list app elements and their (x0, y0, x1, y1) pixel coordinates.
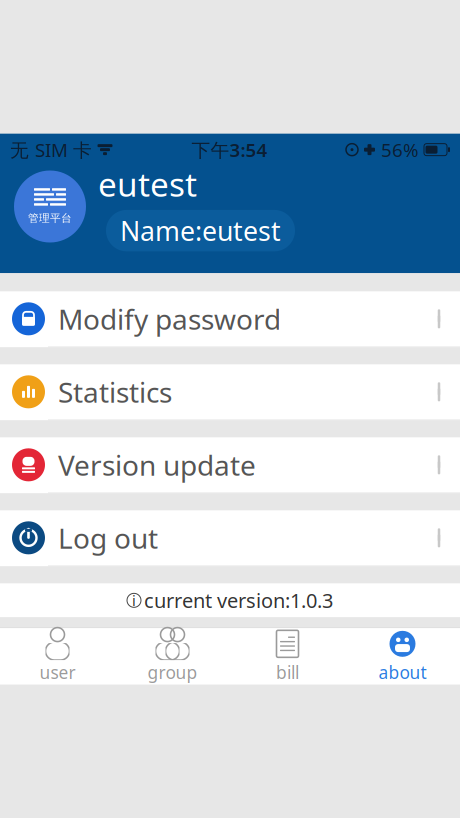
button[interactable]: user (0, 628, 115, 684)
staticText: Statistics (58, 373, 172, 410)
button[interactable]: about (345, 628, 460, 684)
staticText: group (147, 661, 197, 684)
staticText: 下午3:54 (191, 137, 267, 162)
staticText: 无 SIM 卡 (10, 137, 92, 162)
staticText: 管理平台 (28, 212, 72, 225)
staticText: bill (276, 661, 299, 684)
button[interactable]: Modify password (0, 291, 460, 347)
button[interactable]: Log out (0, 510, 460, 566)
staticText: current version:1.0.3 (144, 587, 333, 614)
button[interactable]: Version update (0, 437, 460, 493)
staticText: Modify password (58, 300, 281, 337)
staticText: user (39, 661, 75, 684)
staticText: Log out (58, 519, 158, 556)
staticText: i (132, 591, 136, 610)
staticText: about (378, 661, 426, 684)
staticText: 56% (381, 137, 419, 162)
staticText: Name:eutest (120, 213, 281, 248)
staticText: Version update (58, 446, 256, 483)
button[interactable]: bill (230, 628, 345, 684)
staticText: eutest (98, 162, 197, 206)
button[interactable]: Statistics (0, 364, 460, 420)
button[interactable]: group (115, 628, 230, 684)
